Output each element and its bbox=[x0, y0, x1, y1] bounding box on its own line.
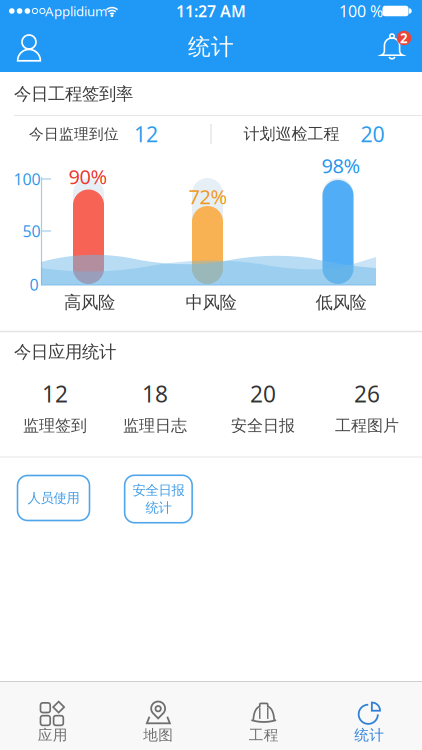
staticText: 98% bbox=[321, 152, 360, 179]
staticText: 统计 bbox=[145, 499, 171, 516]
button[interactable]: 地图 bbox=[105, 682, 211, 750]
staticText: 100 bbox=[13, 168, 40, 190]
button[interactable]: 应用 bbox=[0, 682, 105, 750]
staticText: 20 bbox=[360, 120, 384, 148]
staticText: 26 bbox=[354, 379, 380, 409]
staticText: 今日应用统计 bbox=[14, 341, 116, 363]
staticText: 统计 bbox=[354, 726, 384, 744]
staticText: 地图 bbox=[143, 726, 173, 744]
staticText: 今日监理到位 bbox=[29, 125, 119, 143]
staticText: 监理签到 bbox=[23, 416, 87, 435]
staticText: 今日工程签到率 bbox=[14, 83, 133, 105]
staticText: 100 % bbox=[339, 0, 383, 22]
staticText: 72% bbox=[188, 183, 227, 210]
staticText: 工程 bbox=[249, 726, 279, 744]
staticText: 人员使用 bbox=[27, 490, 79, 506]
staticText: 11:27 AM bbox=[176, 0, 246, 22]
staticText: 50 bbox=[22, 220, 40, 242]
staticText: 低风险 bbox=[315, 292, 366, 313]
staticText: 工程图片 bbox=[335, 416, 399, 435]
staticText: 0 bbox=[29, 274, 38, 295]
staticText: 12 bbox=[42, 379, 68, 409]
staticText: 监理日志 bbox=[123, 416, 187, 435]
staticText: 18 bbox=[142, 379, 168, 409]
staticText: 2 bbox=[400, 29, 408, 47]
staticText: 统计 bbox=[188, 33, 234, 61]
button[interactable] bbox=[14, 32, 44, 62]
staticText: 90% bbox=[68, 163, 107, 190]
button[interactable]: 2 bbox=[378, 29, 412, 63]
button[interactable]: 统计 bbox=[316, 682, 422, 750]
staticText: 安全日报 bbox=[132, 482, 184, 498]
staticText: 安全日报 bbox=[231, 416, 295, 435]
staticText: 计划巡检工程 bbox=[243, 124, 339, 144]
staticText: 应用 bbox=[38, 726, 68, 744]
button[interactable]: 人员使用 bbox=[17, 475, 89, 520]
button[interactable]: 安全日报 bbox=[125, 475, 192, 523]
staticText: 20 bbox=[250, 379, 276, 409]
button[interactable]: 工程 bbox=[211, 682, 316, 750]
staticText: 12 bbox=[134, 120, 158, 148]
staticText: 高风险 bbox=[64, 292, 115, 313]
staticText: Applidium bbox=[45, 2, 107, 20]
staticText: 中风险 bbox=[185, 292, 236, 313]
